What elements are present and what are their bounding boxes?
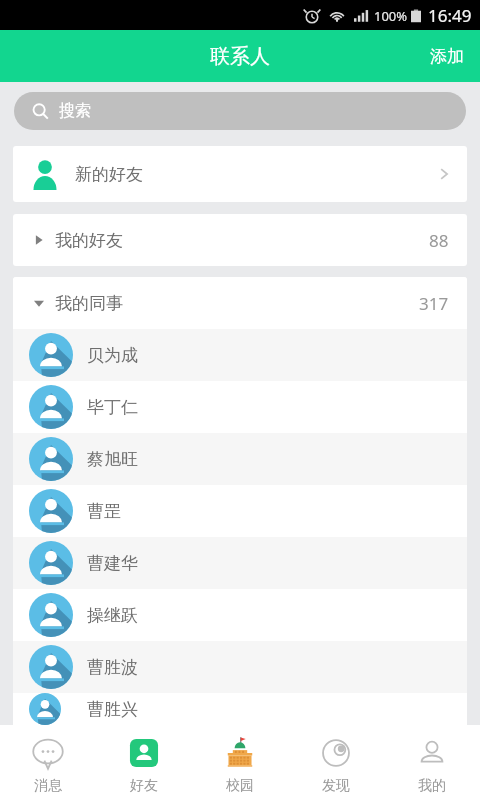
staticText: 联系人: [210, 44, 270, 69]
button[interactable]: 我的好友: [13, 214, 467, 266]
button[interactable]: 我的: [384, 725, 480, 800]
staticText: 搜索: [59, 101, 91, 121]
button[interactable]: 新的好友: [13, 146, 467, 202]
staticText: 我的好友: [55, 230, 123, 251]
staticText: 校园: [226, 777, 254, 795]
staticText: 曹胜波: [87, 657, 138, 678]
button[interactable]: 搜索: [14, 92, 466, 130]
staticText: 添加: [430, 46, 464, 67]
staticText: 发现: [322, 777, 350, 795]
button[interactable]: 校园: [192, 725, 288, 800]
button[interactable]: 曹建华: [13, 537, 467, 589]
button[interactable]: 我的同事: [13, 277, 467, 329]
button[interactable]: 曹胜波: [13, 641, 467, 693]
button[interactable]: 好友: [96, 725, 192, 800]
staticText: 曹胜兴: [87, 699, 138, 720]
staticText: 新的好友: [75, 164, 143, 185]
staticText: 我的同事: [55, 293, 123, 314]
staticText: 操继跃: [87, 605, 138, 626]
button[interactable]: 操继跃: [13, 589, 467, 641]
button[interactable]: 消息: [0, 725, 96, 800]
staticText: 曹建华: [87, 553, 138, 574]
staticText: 毕丁仁: [87, 397, 138, 418]
staticText: 蔡旭旺: [87, 449, 138, 470]
staticText: 贝为成: [87, 345, 138, 366]
button[interactable]: 发现: [288, 725, 384, 800]
staticText: 我的: [418, 777, 446, 795]
button[interactable]: 曹罡: [13, 485, 467, 537]
button[interactable]: 贝为成: [13, 329, 467, 381]
staticText: 好友: [130, 777, 158, 795]
staticText: 消息: [34, 777, 62, 795]
staticText: 100%: [374, 7, 408, 25]
staticText: 317: [419, 292, 449, 315]
staticText: 88: [429, 229, 449, 252]
staticText: 曹罡: [87, 501, 121, 522]
staticText: 16:49: [428, 4, 472, 27]
button[interactable]: 添加: [414, 30, 480, 82]
button[interactable]: 曹胜兴: [13, 693, 467, 725]
button[interactable]: 蔡旭旺: [13, 433, 467, 485]
button[interactable]: 毕丁仁: [13, 381, 467, 433]
